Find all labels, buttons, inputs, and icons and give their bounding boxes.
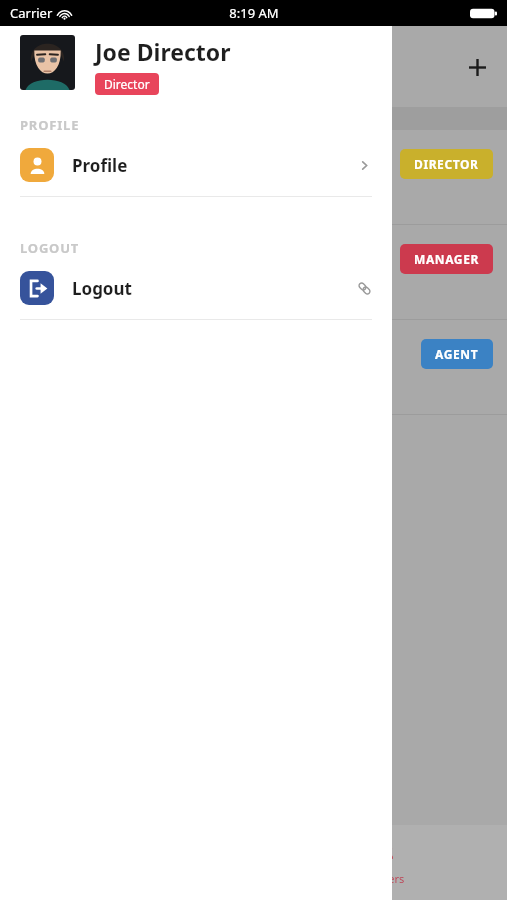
button[interactable]: sd: [0, 130, 507, 225]
staticText: LOGOUT: [20, 239, 80, 257]
staticText: MANAGER: [414, 251, 479, 267]
button[interactable]: AGENT: [0, 320, 507, 415]
button[interactable]: td: [0, 225, 507, 320]
staticText: PROFILE: [20, 116, 80, 134]
staticText: td: [14, 263, 28, 282]
staticText: Joe Director: [95, 36, 231, 67]
staticText: Members: [355, 871, 405, 886]
staticText: Carrier: [10, 4, 53, 22]
staticText: 8:19 AM: [229, 4, 279, 22]
other: Open profile: [357, 158, 372, 173]
button[interactable]: Members: [253, 825, 507, 900]
button[interactable]: Director: [95, 73, 159, 95]
staticText: sd: [14, 168, 30, 187]
button[interactable]: Add member: [455, 45, 499, 89]
staticText: Profile: [72, 154, 128, 177]
staticText: DIRECTOR: [414, 156, 479, 172]
staticText: Director: [104, 76, 150, 92]
button[interactable]: Profile: [0, 134, 392, 196]
staticText: AGENT: [435, 346, 479, 362]
button[interactable]: Logout: [0, 257, 392, 319]
other: Logout: [357, 281, 372, 296]
staticText: Logout: [72, 277, 132, 300]
